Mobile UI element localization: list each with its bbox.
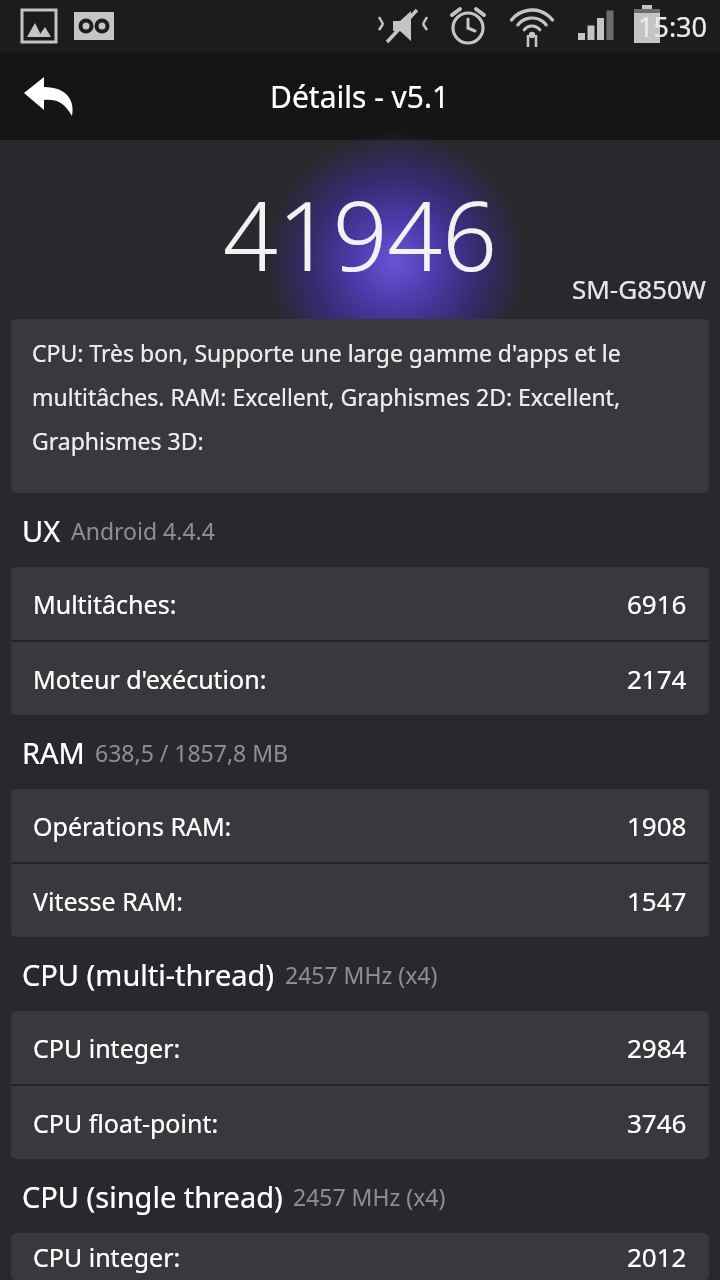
- button[interactable]: Back: [14, 60, 86, 132]
- staticText: Moteur d'exécution:: [33, 662, 267, 696]
- staticText: CPU (single thread): [22, 1177, 283, 1216]
- staticText: 41946: [223, 168, 498, 299]
- staticText: 2174: [627, 661, 687, 696]
- button[interactable]: CPU float-point:: [11, 1086, 709, 1159]
- staticText: SM-G850W: [572, 271, 706, 306]
- staticText: 2457 MHz (x4): [285, 959, 438, 990]
- staticText: CPU float-point:: [33, 1106, 219, 1140]
- staticText: 3746: [627, 1105, 687, 1140]
- button[interactable]: Moteur d'exécution:: [11, 642, 709, 715]
- button[interactable]: CPU: Très bon, Supporte une large gamme …: [11, 319, 709, 493]
- staticText: 638,5 / 1857,8 MB: [95, 737, 289, 768]
- button[interactable]: CPU integer:: [11, 1011, 709, 1084]
- staticText: RAM: [22, 733, 85, 772]
- button[interactable]: Opérations RAM:: [11, 789, 709, 862]
- staticText: CPU integer:: [33, 1031, 181, 1065]
- staticText: 1908: [627, 808, 687, 843]
- staticText: 6916: [627, 586, 687, 621]
- staticText: CPU: Très bon, Supporte une large gamme …: [32, 337, 693, 456]
- staticText: CPU integer:: [33, 1240, 181, 1274]
- staticText: 2984: [627, 1030, 687, 1065]
- staticText: CPU (multi-thread): [22, 955, 275, 994]
- staticText: 15:30: [638, 8, 708, 45]
- button[interactable]: Multitâches:: [11, 567, 709, 640]
- staticText: Vitesse RAM:: [33, 884, 184, 918]
- staticText: 1547: [627, 883, 687, 918]
- button[interactable]: CPU integer:: [11, 1233, 709, 1280]
- staticText: 2012: [627, 1239, 687, 1274]
- staticText: Multitâches:: [33, 587, 177, 621]
- staticText: Android 4.4.4: [71, 515, 215, 546]
- staticText: Détails - v5.1: [270, 76, 450, 117]
- button[interactable]: Vitesse RAM:: [11, 864, 709, 937]
- staticText: 2457 MHz (x4): [293, 1181, 446, 1212]
- staticText: UX: [22, 511, 61, 550]
- staticText: Opérations RAM:: [33, 809, 232, 843]
